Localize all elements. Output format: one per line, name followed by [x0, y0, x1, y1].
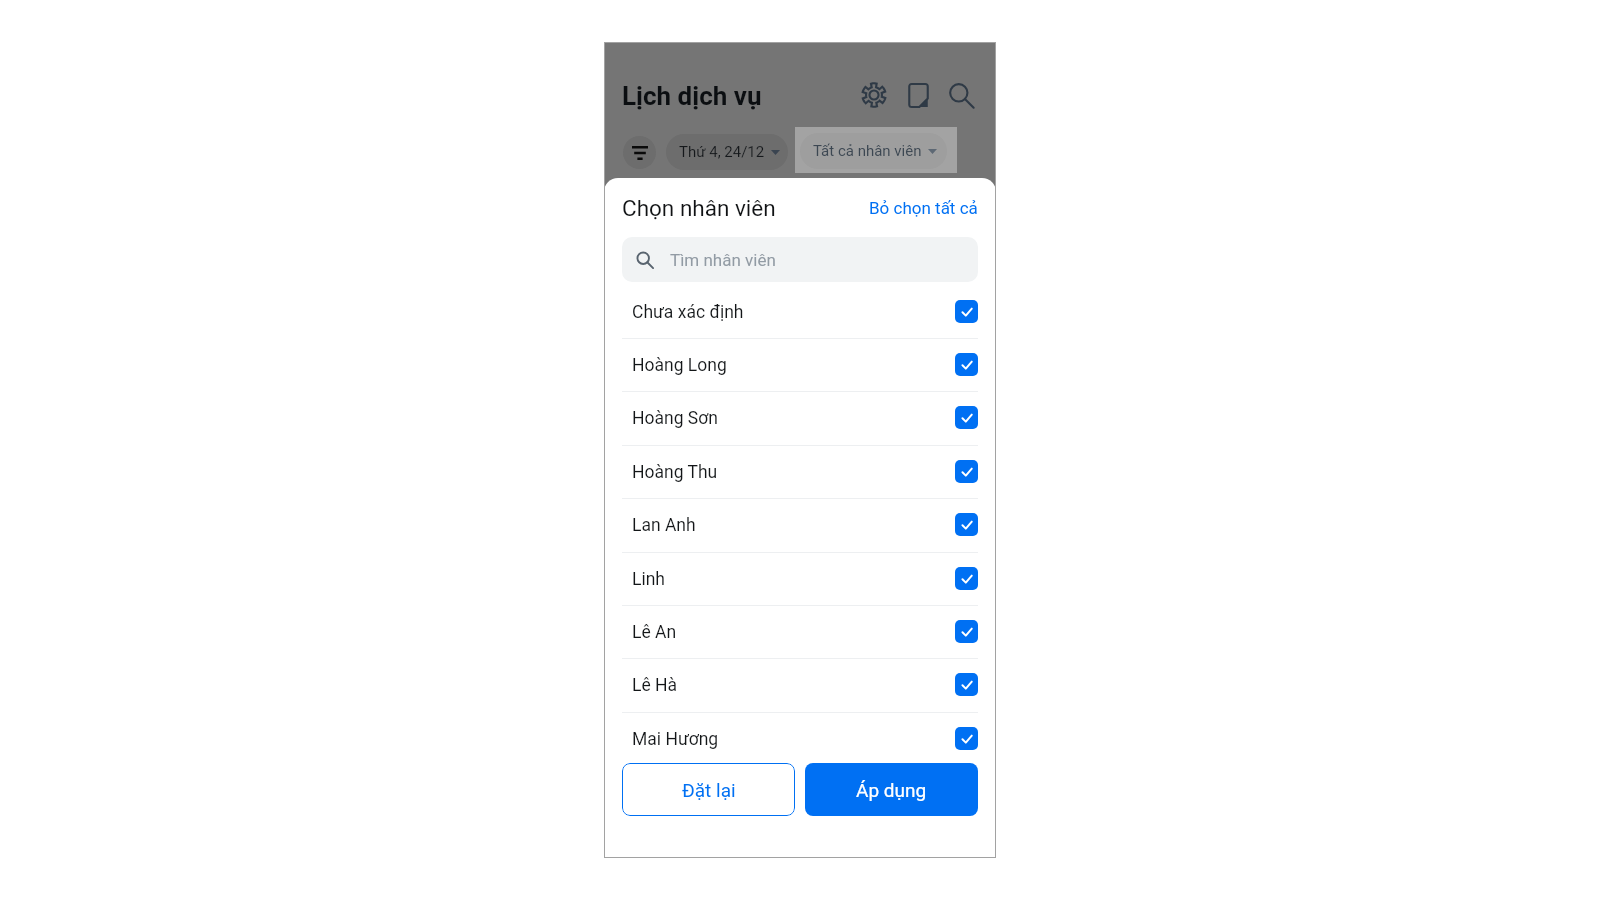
button[interactable]: Lê An — [604, 605, 996, 658]
staticText: Hoàng Long — [632, 355, 727, 376]
staticText: Linh — [632, 569, 665, 590]
button[interactable]: Mai Hương — [604, 712, 996, 765]
button[interactable]: Bỏ chọn tất cả — [868, 194, 978, 222]
button[interactable]: Lan Anh — [604, 498, 996, 551]
button[interactable]: Tìm nhân viên — [622, 237, 978, 282]
staticText: Thứ 4, 24/12 — [679, 143, 765, 161]
button[interactable]: Hoàng Long — [604, 338, 996, 391]
staticText: Hoàng Thu — [632, 462, 718, 483]
button[interactable]: Notes — [898, 75, 938, 115]
button[interactable]: Lê Hà — [604, 658, 996, 711]
button[interactable]: Chưa xác định — [604, 285, 996, 338]
staticText: Tìm nhân viên — [670, 250, 776, 270]
button[interactable]: Linh — [604, 552, 996, 605]
staticText: Lịch dịch vụ — [622, 81, 762, 111]
staticText: Bỏ chọn tất cả — [869, 198, 978, 218]
button[interactable]: Áp dụng — [805, 763, 978, 816]
staticText: Đặt lại — [682, 779, 736, 801]
staticText: Mai Hương — [632, 729, 719, 750]
staticText: Hoàng Sơn — [632, 408, 718, 429]
staticText: Áp dụng — [856, 779, 927, 801]
button[interactable]: Search — [941, 75, 981, 115]
button[interactable]: Filter — [623, 136, 656, 169]
button[interactable]: Hoàng Sơn — [604, 391, 996, 444]
staticText: Chọn nhân viên — [622, 195, 776, 221]
button[interactable]: Đặt lại — [622, 763, 795, 816]
button[interactable]: Tất cả nhân viên — [800, 133, 947, 169]
staticText: Tất cả nhân viên — [813, 142, 922, 160]
button[interactable]: Thứ 4, 24/12 — [666, 134, 788, 170]
staticText: Chưa xác định — [632, 302, 744, 323]
staticText: Lan Anh — [632, 515, 696, 536]
button[interactable]: Settings — [854, 75, 894, 115]
button[interactable]: Hoàng Thu — [604, 445, 996, 498]
staticText: Lê Hà — [632, 675, 678, 696]
staticText: Lê An — [632, 622, 677, 643]
